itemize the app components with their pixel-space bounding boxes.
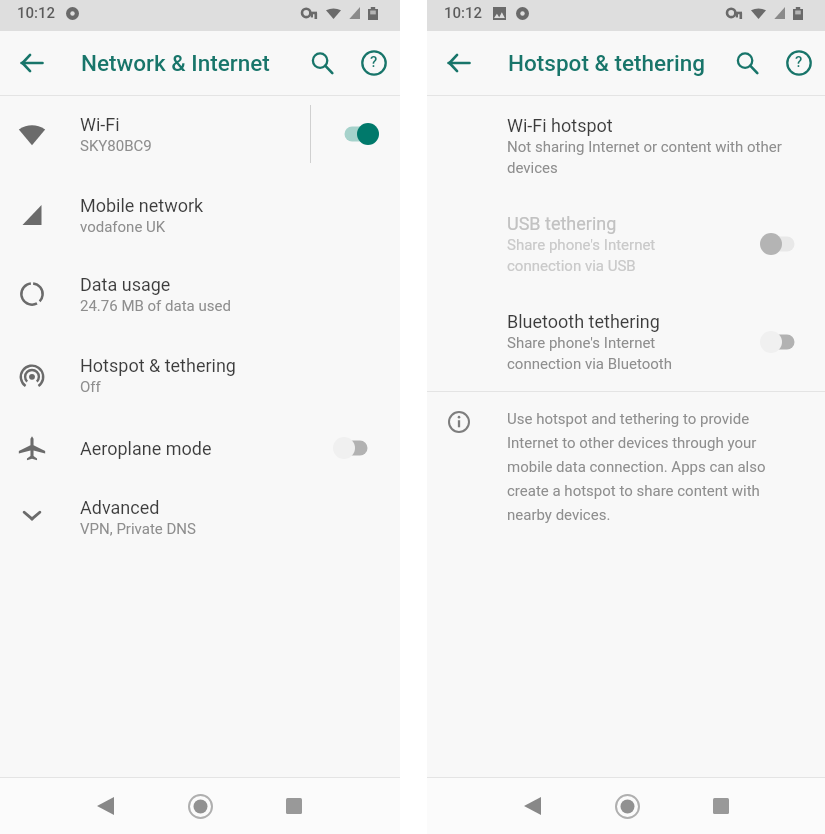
button[interactable]: Mobile network	[0, 175, 400, 255]
button[interactable]: On	[341, 121, 379, 147]
button[interactable]: Search	[721, 31, 773, 95]
button[interactable]: Off	[760, 231, 798, 257]
staticText: vodafone UK	[80, 218, 166, 236]
staticText: Network & Internet	[81, 50, 270, 76]
staticText: 10:12	[17, 4, 56, 22]
staticText: Wi-Fi hotspot	[507, 115, 613, 136]
button[interactable]: Back	[508, 778, 556, 834]
staticText: Share phone's Internet connection via US…	[507, 236, 656, 274]
staticText: ?	[370, 53, 378, 71]
staticText: Off	[80, 378, 101, 396]
staticText: 10:12	[444, 4, 483, 22]
button[interactable]: Back	[81, 778, 129, 834]
button[interactable]: Help	[773, 31, 825, 95]
button[interactable]: Search	[296, 31, 348, 95]
button[interactable]: Back	[0, 31, 64, 95]
button[interactable]: Aeroplane mode	[0, 416, 400, 480]
staticText: VPN, Private DNS	[80, 520, 196, 538]
button[interactable]: Wi-Fi	[0, 94, 400, 174]
staticText: Not sharing Internet or content with oth…	[507, 138, 799, 176]
staticText: Advanced	[80, 497, 160, 518]
staticText: Wi-Fi	[80, 114, 120, 135]
button[interactable]: Help	[348, 31, 400, 95]
button[interactable]: Recents	[697, 778, 745, 834]
staticText: Hotspot & tethering	[508, 50, 706, 76]
button[interactable]: USB tethering	[427, 207, 825, 280]
button[interactable]: Hotspot & tethering	[0, 335, 400, 415]
button[interactable]: Home	[603, 778, 651, 834]
button[interactable]: Off	[760, 329, 798, 355]
button[interactable]: Back	[427, 31, 491, 95]
staticText: USB tethering	[507, 213, 617, 234]
staticText: Use hotspot and tethering to provide Int…	[507, 410, 775, 524]
button[interactable]: Recents	[270, 778, 318, 834]
staticText: Mobile network	[80, 195, 204, 216]
staticText: Bluetooth tethering	[507, 311, 660, 332]
button[interactable]: Advanced	[0, 477, 400, 557]
button[interactable]: Bluetooth tethering	[427, 305, 825, 378]
staticText: SKY80BC9	[80, 137, 152, 155]
staticText: Hotspot & tethering	[80, 355, 236, 376]
staticText: Data usage	[80, 274, 171, 295]
staticText: ?	[795, 53, 803, 71]
staticText: Aeroplane mode	[80, 438, 212, 459]
staticText: 24.76 MB of data used	[80, 297, 231, 315]
button[interactable]: Off	[333, 435, 371, 461]
button[interactable]: Home	[176, 778, 224, 834]
staticText: Share phone's Internet connection via Bl…	[507, 334, 672, 372]
button[interactable]: Data usage	[0, 254, 400, 334]
button[interactable]: Wi-Fi hotspot	[427, 109, 825, 182]
